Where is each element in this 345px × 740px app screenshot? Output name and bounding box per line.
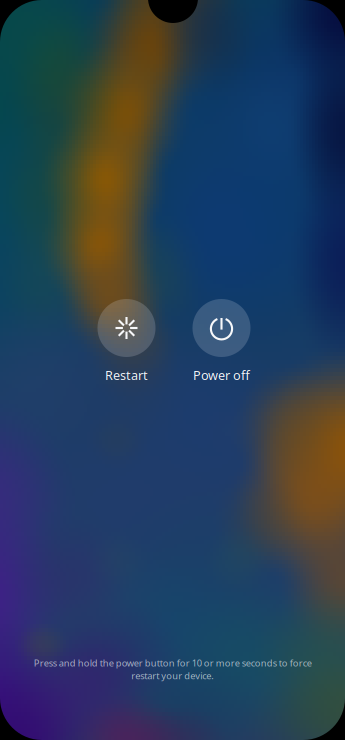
button[interactable]: Restart — [79, 299, 174, 383]
button[interactable]: Power off — [174, 299, 269, 383]
staticText: Press and hold the power button for 10 o… — [33, 657, 311, 682]
staticText: Restart — [105, 366, 148, 384]
staticText: Power off — [193, 366, 250, 384]
